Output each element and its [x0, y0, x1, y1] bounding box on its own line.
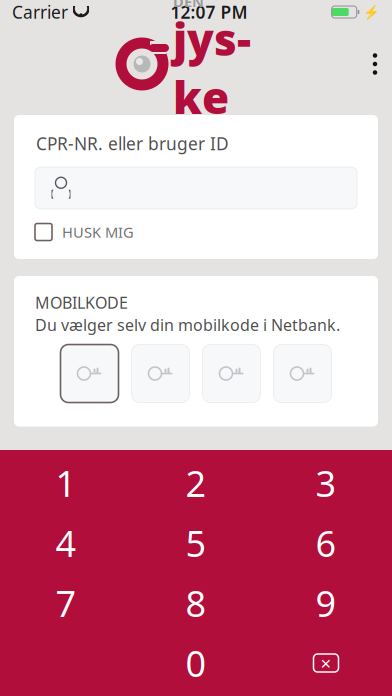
button[interactable]: 6 — [261, 513, 391, 573]
staticText: 3 — [315, 459, 336, 507]
staticText: 12:07 PM — [170, 0, 247, 23]
button[interactable]: 3 — [261, 453, 391, 513]
button[interactable]: Mobilkode digit — [273, 344, 331, 402]
staticText: ⚡ — [363, 4, 380, 20]
button[interactable]: Mobilkode digit — [131, 344, 189, 402]
button[interactable]: 2 — [131, 453, 261, 513]
button[interactable]: 1 — [1, 453, 131, 513]
staticText: 1 — [55, 459, 76, 507]
staticText: 2 — [185, 459, 206, 507]
staticText: 8 — [185, 579, 206, 627]
staticText: × — [320, 651, 331, 675]
staticText: HUSK MIG — [62, 222, 134, 242]
button[interactable]: Mobilkode digit 1 — [60, 344, 118, 402]
button[interactable]: 9 — [261, 573, 391, 633]
button[interactable]: 4 — [1, 513, 131, 573]
staticText: jyske — [173, 9, 251, 126]
button[interactable]: 8 — [131, 573, 261, 633]
button[interactable]: 0 — [131, 633, 261, 693]
staticText: Carrier — [12, 0, 68, 23]
button[interactable]: 5 — [131, 513, 261, 573]
staticText: 0 — [185, 639, 206, 687]
staticText: CPR-NR. eller bruger ID — [36, 132, 229, 155]
staticText: 7 — [55, 579, 76, 627]
button[interactable]: Mobilkode digit — [202, 344, 260, 402]
button[interactable]: More options — [358, 42, 392, 86]
staticText: MOBILKODE — [35, 292, 128, 313]
staticText: DEN — [173, 0, 204, 11]
staticText: 5 — [185, 519, 206, 567]
button[interactable] — [35, 167, 357, 209]
staticText: 9 — [315, 579, 336, 627]
staticText: 4 — [55, 519, 76, 567]
button[interactable]: 7 — [1, 573, 131, 633]
staticText: Du vælger selv din mobilkode i Netbank. — [35, 314, 340, 335]
button[interactable]: Delete — [261, 633, 391, 693]
staticText: 6 — [315, 519, 336, 567]
button[interactable]: HUSK MIG — [35, 219, 357, 245]
